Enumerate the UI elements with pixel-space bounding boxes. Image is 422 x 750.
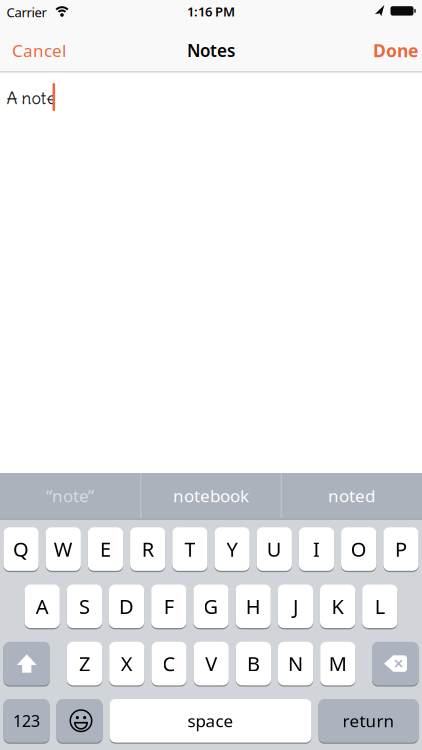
staticText: X — [121, 650, 133, 677]
button[interactable]: N — [278, 642, 313, 685]
button[interactable]: Y — [214, 527, 250, 571]
staticText: N — [288, 650, 303, 677]
staticText: Q — [13, 536, 29, 562]
staticText: space — [187, 709, 233, 732]
button[interactable]: notebook — [141, 473, 281, 518]
staticText: V — [205, 650, 217, 677]
button[interactable]: J — [278, 584, 313, 628]
button[interactable]: Done — [373, 35, 418, 65]
staticText: C — [162, 650, 175, 677]
button[interactable]: F — [151, 584, 186, 628]
button[interactable]: P — [383, 527, 418, 571]
staticText: E — [100, 536, 111, 562]
staticText: O — [351, 536, 367, 562]
staticText: Y — [227, 536, 238, 562]
staticText: W — [54, 536, 73, 562]
button[interactable]: M — [320, 642, 355, 685]
staticText: M — [329, 650, 347, 677]
staticText: return — [342, 709, 394, 732]
staticText: P — [395, 536, 407, 562]
staticText: F — [164, 593, 174, 620]
staticText: Notes — [187, 39, 235, 62]
staticText: B — [247, 650, 260, 677]
button[interactable]: X — [109, 642, 144, 685]
button[interactable]: D — [109, 584, 144, 628]
staticText: A note — [6, 87, 55, 109]
staticText: R — [142, 536, 154, 562]
staticText: Carrier — [6, 3, 46, 21]
button[interactable]: S — [67, 584, 102, 628]
button[interactable]: K — [320, 584, 355, 628]
button[interactable]: Cancel — [12, 35, 66, 65]
button[interactable] — [56, 699, 102, 742]
button[interactable]: V — [194, 642, 229, 685]
staticText: K — [332, 593, 344, 620]
staticText: T — [184, 536, 195, 562]
staticText: U — [267, 536, 282, 562]
button[interactable]: R — [130, 527, 165, 571]
button[interactable]: E — [88, 527, 123, 571]
staticText: L — [375, 593, 385, 620]
staticText: notebook — [173, 484, 249, 507]
button[interactable]: Z — [67, 642, 102, 685]
button[interactable]: C — [151, 642, 187, 685]
staticText: A — [36, 593, 49, 620]
button[interactable]: U — [257, 527, 292, 571]
staticText: Done — [373, 39, 418, 62]
staticText: 123 — [13, 710, 40, 731]
button[interactable]: space — [109, 699, 311, 742]
staticText: I — [313, 536, 320, 562]
button[interactable]: H — [236, 584, 271, 628]
staticText: S — [79, 593, 90, 620]
button[interactable] — [372, 642, 418, 685]
button[interactable]: G — [193, 584, 229, 628]
button[interactable]: Q — [3, 527, 39, 571]
button[interactable]: L — [362, 584, 397, 628]
button[interactable]: 123 — [3, 699, 49, 742]
button[interactable]: O — [341, 527, 376, 571]
button[interactable]: B — [236, 642, 271, 685]
staticText: Z — [79, 650, 90, 677]
button[interactable]: I — [299, 527, 334, 571]
staticText: “note” — [46, 484, 94, 507]
staticText: G — [203, 593, 218, 620]
button[interactable]: A — [25, 584, 60, 628]
button[interactable]: “note” — [0, 473, 140, 518]
staticText: D — [119, 593, 134, 620]
button[interactable]: return — [318, 699, 418, 742]
staticText: J — [293, 593, 298, 620]
button[interactable]: noted — [281, 473, 421, 518]
button[interactable]: W — [46, 527, 81, 571]
staticText: noted — [328, 484, 375, 507]
staticText: 1:16 PM — [187, 3, 235, 20]
button[interactable]: T — [172, 527, 207, 571]
button[interactable] — [3, 642, 50, 685]
staticText: H — [246, 593, 261, 620]
staticText: Cancel — [12, 39, 66, 62]
